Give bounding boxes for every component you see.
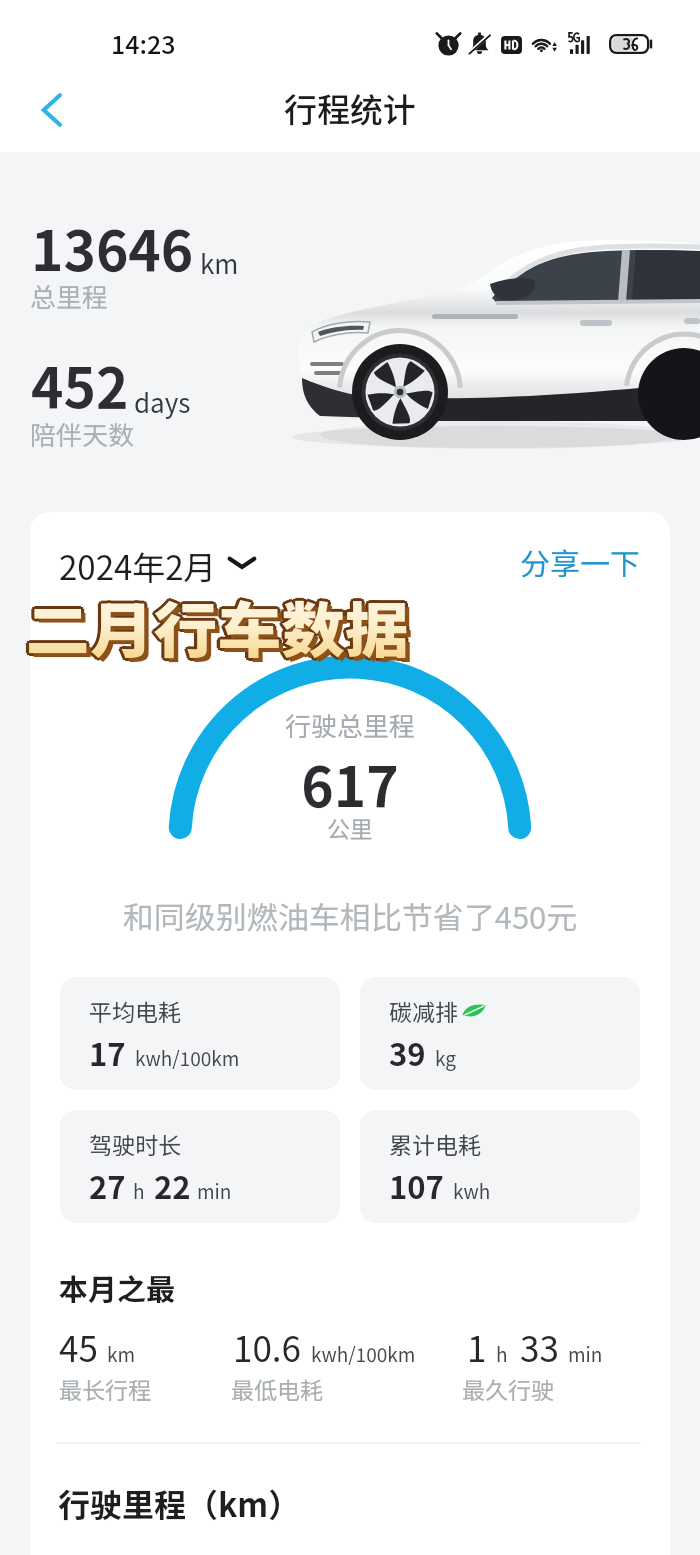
staticText: 平均电耗	[89, 994, 181, 1027]
staticText: kwh	[453, 1177, 491, 1205]
button[interactable]: 2024年2月	[59, 537, 256, 595]
staticText: 二月行车数据	[27, 585, 411, 672]
staticText: 行驶总里程	[0, 706, 700, 744]
button[interactable]: 驾驶时长	[60, 1110, 340, 1223]
staticText: 二月行车数据	[24, 584, 408, 670]
button[interactable]: Back	[22, 80, 82, 140]
staticText: 行驶里程（km）	[58, 1480, 301, 1526]
staticText: 陪伴天数	[30, 415, 135, 453]
staticText: 二月行车数据	[28, 583, 412, 669]
staticText: 二月行车数据	[29, 583, 413, 669]
staticText: 13646	[31, 207, 194, 287]
staticText: 分享一下	[520, 540, 640, 583]
staticText: days	[134, 383, 191, 421]
staticText: 二月行车数据	[26, 586, 410, 673]
staticText: 二月行车数据	[24, 581, 408, 667]
staticText: 二月行车数据	[28, 582, 412, 668]
staticText: 二月行车数据	[26, 581, 410, 667]
staticText: kwh/100km	[135, 1044, 240, 1072]
staticText: 和同级别燃油车相比节省了450元	[0, 893, 700, 938]
button[interactable]: 碳减排	[360, 977, 640, 1090]
button[interactable]: 分享一下	[508, 532, 652, 591]
staticText: 二月行车数据	[28, 581, 412, 667]
staticText: 45	[59, 1321, 98, 1372]
staticText: 二月行车数据	[25, 583, 409, 669]
staticText: 452	[31, 344, 129, 424]
staticText: 二月行车数据	[30, 587, 414, 674]
staticText: 二月行车数据	[26, 583, 410, 669]
staticText: min	[568, 1340, 603, 1368]
staticText: 二月行车数据	[27, 584, 411, 670]
staticText: kwh/100km	[311, 1340, 416, 1368]
staticText: 二月行车数据	[27, 582, 411, 668]
staticText: 累计电耗	[389, 1127, 481, 1160]
staticText: 二月行车数据	[26, 582, 410, 668]
staticText: 行程统计	[0, 84, 700, 132]
staticText: 总里程	[30, 277, 109, 315]
staticText: h	[496, 1340, 508, 1368]
staticText: 二月行车数据	[25, 581, 409, 667]
staticText: 1	[467, 1321, 487, 1372]
staticText: 2024年2月	[59, 542, 217, 590]
staticText: 107	[389, 1163, 444, 1208]
staticText: 二月行车数据	[23, 583, 407, 669]
staticText: 最低电耗	[231, 1372, 323, 1405]
staticText: 碳减排	[389, 994, 458, 1027]
staticText: 33	[520, 1321, 559, 1372]
staticText: 二月行车数据	[24, 583, 408, 669]
staticText: 14:23	[111, 25, 176, 61]
staticText: 驾驶时长	[89, 1127, 181, 1160]
staticText: 二月行车数据	[25, 585, 409, 672]
staticText: 最长行程	[59, 1372, 151, 1405]
staticText: 二月行车数据	[27, 583, 411, 669]
staticText: 二月行车数据	[25, 582, 409, 668]
staticText: km	[107, 1340, 136, 1368]
staticText: 17	[89, 1030, 126, 1075]
staticText: min	[197, 1177, 232, 1205]
staticText: 最久行驶	[462, 1372, 554, 1405]
staticText: 二月行车数据	[26, 580, 410, 666]
staticText: 二月行车数据	[26, 585, 410, 672]
staticText: 39	[389, 1030, 426, 1075]
staticText: 二月行车数据	[27, 581, 411, 667]
staticText: kg	[435, 1044, 456, 1072]
staticText: 二月行车数据	[26, 583, 410, 669]
staticText: 22	[154, 1163, 191, 1208]
staticText: 二月行车数据	[25, 584, 409, 670]
staticText: 二月行车数据	[24, 585, 408, 672]
staticText: 10.6	[233, 1321, 302, 1372]
staticText: 二月行车数据	[28, 585, 412, 672]
button[interactable]: 累计电耗	[360, 1110, 640, 1223]
staticText: 617	[0, 743, 700, 823]
staticText: 二月行车数据	[24, 582, 408, 668]
staticText: 二月行车数据	[28, 584, 412, 670]
button[interactable]: 平均电耗	[60, 977, 340, 1090]
staticText: 本月之最	[59, 1266, 176, 1308]
staticText: km	[200, 244, 239, 282]
staticText: 公里	[0, 811, 700, 844]
staticText: h	[133, 1177, 145, 1205]
staticText: 27	[89, 1163, 126, 1208]
staticText: 二月行车数据	[26, 584, 410, 670]
